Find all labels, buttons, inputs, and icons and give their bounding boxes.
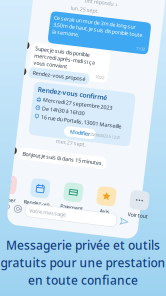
button[interactable]: Paiement — [68, 184, 98, 212]
button[interactable]: Prendre une photo — [26, 213, 34, 221]
staticText: en toute confiance — [28, 272, 138, 288]
staticText: Messagerie privée et outils — [6, 237, 160, 253]
staticText: Voir tout — [140, 205, 160, 212]
staticText: Rendez-vous confirmé — [36, 91, 106, 100]
staticText: Rendez-vous proposé — [29, 76, 82, 83]
staticText: Super, je suis disponible mercredi après… — [28, 52, 89, 73]
staticText: Modifier — [73, 130, 93, 137]
staticText: De 14h30 à 16h30 — [42, 110, 85, 118]
staticText: Avis — [112, 205, 122, 212]
staticText: Rendez-vous — [35, 205, 65, 212]
staticText: gratuits pour une prestation — [0, 255, 165, 270]
staticText: Le 25/09/2023 à 12:21 — [88, 131, 124, 137]
staticText: Décliner — [7, 205, 27, 212]
staticText: 10:22 — [91, 74, 100, 79]
staticText: lun. 25 sept. — [59, 7, 87, 14]
staticText: Mercredi 27 septembre 2023 — [42, 102, 112, 109]
button[interactable]: Voir tout — [135, 184, 165, 212]
button[interactable]: Rendez-vous — [35, 184, 65, 212]
staticText: › — [103, 0, 105, 6]
button[interactable]: Envoyer — [133, 213, 141, 220]
staticText: Ce serait un mur de 3m de long sur 3,50m… — [43, 19, 133, 40]
staticText: 16 rue du Portalis, 13001 Marseille — [42, 119, 123, 126]
button[interactable]: Modifier — [67, 129, 99, 139]
staticText: ont répondu — [72, 0, 101, 5]
button[interactable]: Avis — [102, 184, 132, 212]
staticText: mer. 27 sept. — [60, 141, 90, 148]
staticText: Votre message — [42, 213, 79, 220]
button[interactable]: Décliner — [2, 184, 32, 212]
staticText: Paiement — [72, 205, 95, 212]
staticText: Bonjour, je suis là dans 15 minutes. — [28, 158, 109, 165]
